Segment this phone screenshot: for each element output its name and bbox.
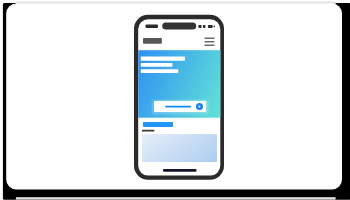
button[interactable]: Go — [196, 103, 203, 110]
button[interactable]: Get started — [143, 122, 173, 127]
button[interactable]: Open navigation menu — [203, 36, 216, 48]
button[interactable]: Search — [154, 101, 206, 112]
button[interactable]: Featured media — [142, 134, 217, 162]
